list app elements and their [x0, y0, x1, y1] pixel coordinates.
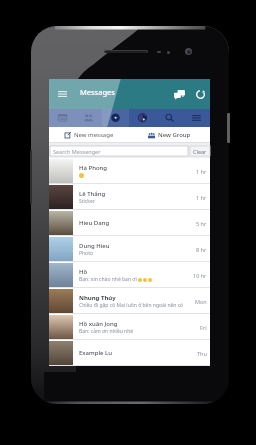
button[interactable]: Search: [156, 109, 183, 127]
staticText: Dung Hieu: [79, 242, 110, 250]
staticText: Mon: [195, 298, 207, 305]
button[interactable]: Example Lu: [49, 340, 210, 366]
button[interactable]: News Feed: [49, 109, 75, 127]
button[interactable]: New Group: [129, 127, 210, 143]
button[interactable]: New message: [49, 127, 129, 143]
button[interactable]: Hieu Dang: [49, 210, 210, 236]
staticText: 5 hr: [196, 220, 207, 227]
button[interactable]: Lê Thắng: [49, 184, 210, 210]
staticText: Bạn: xin chào nhé bạn ơi: [79, 276, 137, 283]
staticText: Hồ xuân Jong: [79, 320, 118, 328]
staticText: 1 hr: [196, 194, 207, 201]
staticText: Example Lu: [79, 349, 113, 357]
staticText: Sticker: [79, 198, 95, 205]
staticText: Nhung Thúy: [79, 294, 116, 302]
staticText: Hieu Dang: [79, 219, 110, 227]
staticText: Hồ: [79, 268, 88, 276]
button[interactable]: More: [183, 109, 210, 127]
button[interactable]: Messenger: [102, 109, 129, 127]
staticText: Search Messenger: [53, 148, 101, 155]
staticText: Lê Thắng: [79, 190, 106, 198]
button[interactable]: Nhung Thúy: [49, 288, 210, 314]
staticText: 8 hr: [196, 246, 207, 253]
button[interactable]: Friends: [75, 109, 102, 127]
button[interactable]: Notifications: [129, 109, 156, 127]
staticText: Photo: [79, 250, 93, 257]
staticText: New message: [74, 131, 114, 139]
button[interactable]: Hồ xuân Jong: [49, 314, 210, 340]
staticText: Thu: [197, 350, 207, 357]
button[interactable]: Hồ: [49, 262, 210, 288]
button[interactable]: New chat: [170, 85, 188, 103]
staticText: Fri: [200, 324, 207, 331]
button[interactable]: Menu: [54, 86, 70, 102]
staticText: Clear: [193, 148, 207, 155]
button[interactable]: Refresh: [191, 85, 209, 103]
staticText: Messages: [80, 87, 115, 97]
staticText: 1 hr: [196, 168, 207, 175]
button[interactable]: Clear: [190, 146, 210, 156]
staticText: Hà Phong: [79, 164, 108, 172]
staticText: Bạn: cảm ơn nhiều nhé: [79, 328, 134, 335]
staticText: Chiều đi gặp cô Mai luôn ở bên ngoài nên…: [79, 302, 195, 309]
staticText: New Group: [158, 131, 191, 139]
button[interactable]: Hà Phong: [49, 158, 210, 184]
button[interactable]: Dung Hieu: [49, 236, 210, 262]
staticText: 10 hr: [193, 272, 207, 279]
